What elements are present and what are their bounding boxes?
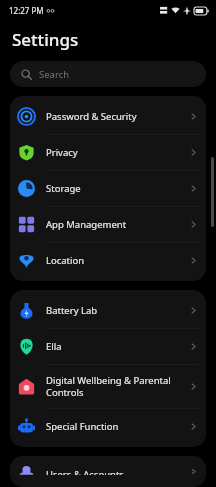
button[interactable]: Location <box>10 243 206 278</box>
button[interactable]: Storage <box>10 171 206 206</box>
staticText: 12:27 PM <box>9 5 44 16</box>
staticText: Users & Accounts <box>46 468 183 475</box>
staticText: Privacy <box>46 146 183 159</box>
staticText: Settings <box>12 28 79 51</box>
button[interactable]: Privacy <box>10 135 206 170</box>
staticText: Ella <box>46 340 183 353</box>
button[interactable]: Digital Wellbeing & Parental Controls <box>10 365 206 408</box>
staticText: Location <box>46 254 183 267</box>
button[interactable]: Users & Accounts <box>10 459 206 484</box>
staticText: Password & Security <box>46 110 183 123</box>
staticText: Search <box>39 68 70 81</box>
staticText: Battery Lab <box>46 304 183 317</box>
button[interactable]: Password & Security <box>10 99 206 134</box>
button[interactable]: Special Function <box>10 409 206 444</box>
button[interactable]: App Management <box>10 207 206 242</box>
staticText: Digital Wellbeing & Parental Controls <box>46 374 183 399</box>
staticText: Storage <box>46 182 183 195</box>
staticText: App Management <box>46 218 183 231</box>
staticText: Special Function <box>46 420 183 433</box>
button[interactable]: Search <box>10 61 206 87</box>
button[interactable]: Battery Lab <box>10 293 206 328</box>
button[interactable]: Ella <box>10 329 206 364</box>
